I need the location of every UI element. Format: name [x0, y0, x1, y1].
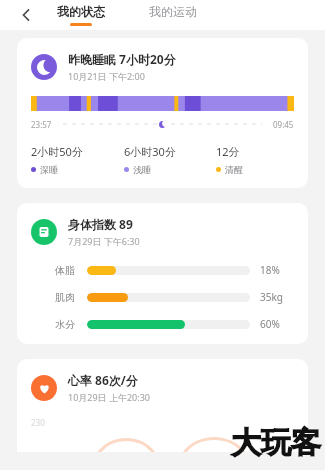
- staticText: 35kg: [260, 290, 292, 304]
- staticText: 60%: [260, 317, 292, 331]
- staticText: 6小时30分: [124, 144, 176, 159]
- staticText: 09:45: [273, 119, 294, 130]
- staticText: 浅睡: [133, 164, 151, 175]
- staticText: 我的运动: [149, 4, 197, 19]
- button[interactable]: 我的状态: [55, 4, 107, 26]
- staticText: 7月29日 下午6:30: [68, 235, 140, 247]
- staticText: 水分: [55, 318, 81, 331]
- button[interactable]: 心率 86次/分: [17, 359, 308, 452]
- button[interactable]: 身体指数 89: [17, 203, 308, 344]
- staticText: 12分: [216, 144, 240, 159]
- staticText: 体脂: [55, 264, 81, 277]
- staticText: 我的状态: [57, 4, 105, 19]
- staticText: 2小时50分: [31, 144, 83, 159]
- staticText: 10月21日 下午2:00: [68, 70, 145, 82]
- staticText: 深睡: [40, 164, 58, 175]
- staticText: 心率 86次/分: [68, 372, 138, 388]
- staticText: 身体指数 89: [68, 216, 133, 232]
- staticText: 昨晚睡眠 7小时20分: [68, 51, 176, 67]
- button[interactable]: 我的运动: [147, 4, 199, 26]
- staticText: 18%: [260, 263, 292, 277]
- staticText: 肌肉: [55, 291, 81, 304]
- staticText: 230: [31, 417, 45, 428]
- staticText: 大玩客: [231, 424, 321, 462]
- staticText: 清醒: [225, 164, 243, 175]
- button[interactable]: Back: [14, 3, 38, 27]
- staticText: 23:57: [31, 119, 52, 130]
- button[interactable]: 昨晚睡眠 7小时20分: [17, 38, 308, 188]
- staticText: 10月29日 上午20:30: [68, 391, 150, 403]
